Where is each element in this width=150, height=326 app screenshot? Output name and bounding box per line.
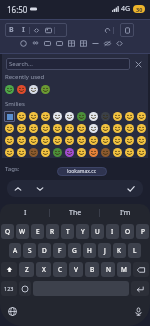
button[interactable]: Close — [131, 58, 145, 70]
button[interactable]: J — [98, 243, 111, 258]
button[interactable]: Emoji — [87, 110, 99, 122]
button[interactable]: R — [46, 224, 59, 239]
button[interactable]: Change keyboard — [5, 304, 19, 318]
button[interactable]: V — [69, 262, 83, 277]
button[interactable]: S — [23, 243, 36, 258]
button[interactable]: Format — [41, 36, 53, 50]
button[interactable]: Search... — [6, 58, 130, 70]
button[interactable]: Emoji — [27, 146, 39, 158]
button[interactable]: Emoji — [39, 134, 51, 146]
button[interactable]: Emoji — [3, 110, 15, 122]
button[interactable]: Emoji — [111, 122, 123, 134]
button[interactable]: Format — [89, 36, 101, 50]
button[interactable]: Z — [19, 262, 34, 277]
button[interactable]: Numbers — [1, 281, 17, 296]
button[interactable]: Emoji — [51, 122, 63, 134]
button[interactable]: Emoji — [27, 134, 39, 146]
button[interactable]: T — [61, 224, 74, 239]
button[interactable]: Emoji — [63, 110, 75, 122]
button[interactable]: Emoji — [99, 146, 111, 158]
button[interactable]: Emoji — [63, 146, 75, 158]
button[interactable]: Emoji — [39, 83, 51, 95]
button[interactable]: E — [31, 224, 44, 239]
button[interactable]: Format — [17, 23, 29, 37]
button[interactable]: Emoji — [15, 146, 27, 158]
button[interactable]: Emoji — [123, 146, 135, 158]
button[interactable]: O — [121, 224, 134, 239]
button[interactable]: D — [38, 243, 51, 258]
button[interactable]: L — [128, 243, 141, 258]
button[interactable]: Emoji — [111, 134, 123, 146]
button[interactable]: Emoji — [75, 122, 87, 134]
button[interactable]: I — [0, 204, 50, 222]
button[interactable]: Emoji — [63, 134, 75, 146]
button[interactable]: Format — [29, 36, 41, 50]
button[interactable]: Emoji — [135, 134, 147, 146]
button[interactable]: Format — [42, 23, 54, 37]
button[interactable]: Y — [76, 224, 89, 239]
button[interactable]: Emoji — [3, 134, 15, 146]
button[interactable]: Emoji — [3, 83, 15, 95]
button[interactable]: Emoji — [75, 110, 87, 122]
button[interactable]: F — [53, 243, 66, 258]
button[interactable]: Format — [17, 36, 29, 50]
button[interactable]: P — [136, 224, 149, 239]
button[interactable]: Emoji — [87, 146, 99, 158]
button[interactable]: Emoji — [51, 146, 63, 158]
button[interactable]: Emoji — [27, 110, 39, 122]
button[interactable]: Emoji — [135, 110, 147, 122]
button[interactable]: Format — [53, 36, 65, 50]
button[interactable]: Emoji — [123, 134, 135, 146]
button[interactable]: Format — [30, 23, 42, 37]
button[interactable]: B — [85, 262, 99, 277]
button[interactable]: Emoji — [39, 122, 51, 134]
button[interactable]: Emoji — [123, 110, 135, 122]
button[interactable]: Next field — [29, 180, 51, 197]
button[interactable]: K — [113, 243, 126, 258]
button[interactable]: Emoji — [27, 83, 39, 95]
button[interactable]: Emoji — [15, 110, 27, 122]
button[interactable]: Emoji — [39, 110, 51, 122]
button[interactable]: Emoji — [63, 122, 75, 134]
button[interactable]: Previous field — [7, 180, 29, 197]
button[interactable]: Emoji — [123, 122, 135, 134]
button[interactable]: Enter — [131, 281, 149, 296]
button[interactable]: Format — [77, 36, 89, 50]
button[interactable]: Preview — [120, 23, 134, 37]
button[interactable]: Voice input — [131, 304, 145, 318]
button[interactable]: Emoji — [135, 146, 147, 158]
button[interactable]: Emoji — [51, 110, 63, 122]
button[interactable]: Q — [1, 224, 14, 239]
button[interactable]: A — [9, 243, 21, 258]
button[interactable]: Emoji — [51, 134, 63, 146]
button[interactable]: Shift — [1, 262, 17, 277]
button[interactable]: Emoji — [99, 122, 111, 134]
button[interactable]: Emoji — [39, 146, 51, 158]
button[interactable]: Backspace — [133, 262, 149, 277]
button[interactable]: Emoji — [87, 134, 99, 146]
button[interactable]: M — [117, 262, 131, 277]
button[interactable]: Emoji — [75, 134, 87, 146]
button[interactable]: Format — [113, 36, 125, 50]
button[interactable]: Format — [5, 23, 17, 37]
button[interactable]: W — [16, 224, 29, 239]
button[interactable]: The — [50, 204, 100, 222]
button[interactable]: Format — [101, 23, 113, 37]
button[interactable]: Emoji — [3, 146, 15, 158]
button[interactable]: Emoji — [27, 122, 39, 134]
button[interactable]: Emoji — [111, 146, 123, 158]
button[interactable]: X — [36, 262, 51, 277]
button[interactable]: C — [53, 262, 67, 277]
button[interactable]: Emoji — [111, 110, 123, 122]
button[interactable]: Emoji — [135, 122, 147, 134]
button[interactable]: Format — [55, 23, 67, 37]
button[interactable]: I'm — [100, 204, 150, 222]
button[interactable]: Emoji — [75, 146, 87, 158]
button[interactable]: Emoji — [87, 122, 99, 134]
button[interactable]: Emoji — [99, 134, 111, 146]
button[interactable]: Format — [65, 36, 77, 50]
button[interactable]: H — [83, 243, 96, 258]
button[interactable]: Emoji — [3, 122, 15, 134]
button[interactable]: Emoji — [99, 110, 111, 122]
